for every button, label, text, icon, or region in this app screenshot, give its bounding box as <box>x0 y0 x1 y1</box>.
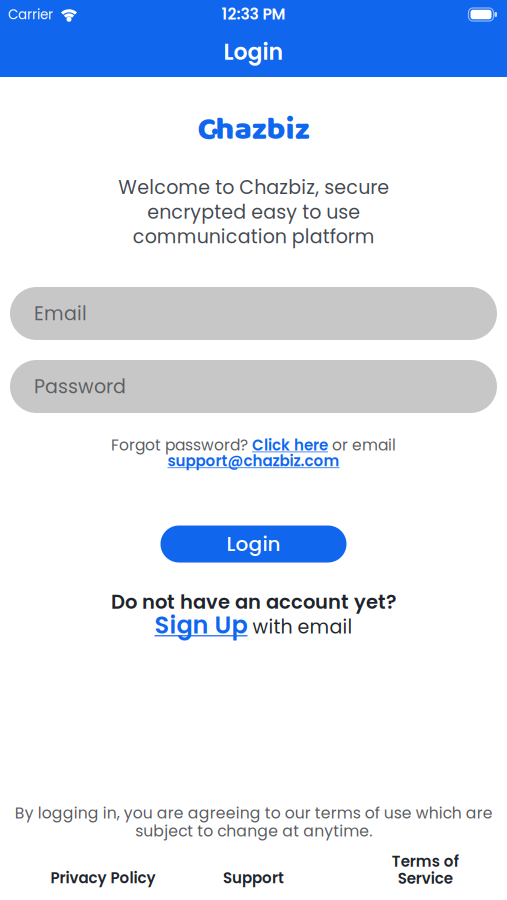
staticText: Forgot password? <box>111 434 252 456</box>
staticText: Do not have an account yet? <box>111 588 396 616</box>
staticText: Privacy Policy <box>50 867 155 888</box>
staticText: Login <box>223 37 283 67</box>
button[interactable]: Login <box>160 525 346 562</box>
staticText: with email <box>247 613 352 640</box>
button[interactable]: Privacy Policy <box>50 867 155 888</box>
button[interactable]: Support <box>223 867 284 888</box>
button[interactable]: Sign Up <box>154 608 247 642</box>
button[interactable]: support@chazbiz.com <box>167 450 339 471</box>
staticText: Login <box>226 530 280 558</box>
button[interactable]: Click here <box>252 435 328 456</box>
staticText: or email <box>328 434 396 456</box>
button[interactable]: Terms of Service <box>391 851 458 889</box>
staticText: Terms of Service <box>391 851 458 889</box>
staticText: Carrier <box>8 5 53 24</box>
staticText: Chazbiz <box>197 104 309 156</box>
button[interactable]: Email <box>10 287 497 340</box>
staticText: support@chazbiz.com <box>167 450 339 471</box>
staticText: Welcome to Chazbiz, secure encrypted eas… <box>118 174 389 250</box>
staticText: Sign Up <box>154 608 247 642</box>
button[interactable]: Password <box>10 360 497 413</box>
staticText: Click here <box>252 435 328 456</box>
staticText: Password <box>34 373 126 400</box>
staticText: 12:33 PM <box>221 3 285 25</box>
staticText: Email <box>34 300 87 327</box>
staticText: Support <box>223 867 284 888</box>
staticText: By logging in, you are agreeing to our t… <box>14 802 492 842</box>
